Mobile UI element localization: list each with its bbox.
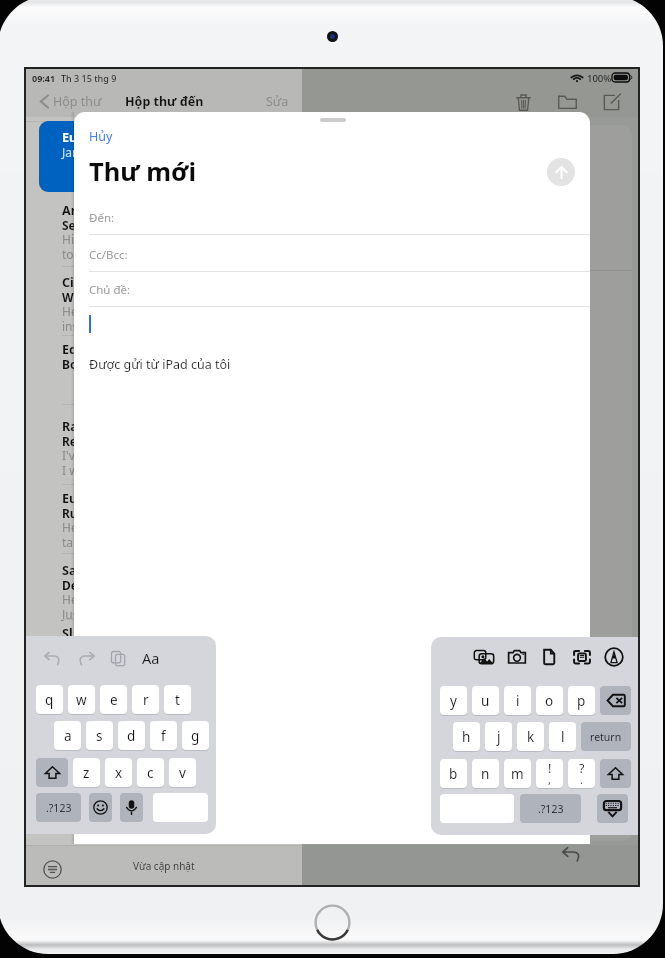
button[interactable]: Sabine Klein	[26, 562, 302, 619]
button[interactable]: Markup	[602, 645, 626, 669]
button[interactable]: f	[150, 721, 177, 750]
button[interactable]: s	[86, 721, 113, 750]
button[interactable]: b	[440, 759, 467, 788]
button[interactable]: Add document	[537, 645, 561, 669]
staticText: ,	[548, 772, 551, 787]
button[interactable]: Paste	[106, 646, 130, 670]
staticText: b	[449, 765, 458, 783]
button[interactable]: .?123	[36, 793, 81, 822]
button[interactable]: w	[68, 685, 95, 714]
staticText: n	[481, 765, 490, 783]
button[interactable]: z	[73, 758, 100, 787]
button[interactable]: l	[549, 722, 576, 751]
staticText: 100%	[587, 72, 612, 85]
button[interactable]: Shift	[36, 758, 68, 787]
button[interactable]: Ed Morrison	[26, 341, 302, 404]
button[interactable]: Take photo	[505, 645, 529, 669]
button[interactable]: r	[132, 685, 159, 714]
staticText: f	[161, 727, 166, 745]
staticText: y	[450, 692, 457, 710]
button[interactable]: Shift	[600, 759, 631, 788]
button[interactable]: Eugene Clark	[39, 121, 295, 192]
button[interactable]: Aa	[138, 646, 164, 670]
button[interactable]: Ciara Murphy	[26, 274, 302, 335]
button[interactable]: h	[453, 722, 480, 751]
button[interactable]: j	[485, 722, 512, 751]
staticText: q	[45, 691, 54, 709]
button[interactable]: a	[54, 721, 81, 750]
button[interactable]: ?	[568, 759, 595, 788]
button[interactable]: Redo	[74, 646, 98, 670]
staticText: Ed Morrison	[62, 341, 137, 358]
staticText: i	[516, 692, 520, 710]
staticText: j	[497, 728, 501, 746]
button[interactable]: Hide keyboard	[597, 794, 628, 823]
button[interactable]: Hủy	[89, 128, 113, 145]
staticText: I would like to get a	[62, 462, 173, 478]
staticText: I've attached the latest	[62, 447, 190, 463]
staticText: Release notes	[62, 433, 145, 449]
button[interactable]: Andrea Nguyen	[26, 202, 302, 266]
button[interactable]: c	[137, 758, 164, 787]
staticText: Đến:	[89, 210, 115, 226]
button[interactable]: Move to folder	[554, 89, 580, 115]
staticText: Eugene Clark	[62, 129, 144, 146]
button[interactable]: p	[568, 686, 595, 715]
button[interactable]: v	[169, 758, 196, 787]
staticText: Chủ đề:	[89, 282, 131, 298]
button[interactable]: return	[581, 722, 631, 751]
button[interactable]: g	[182, 721, 209, 750]
staticText: s	[96, 727, 103, 745]
staticText: a	[64, 727, 72, 745]
button[interactable]: n	[472, 759, 499, 788]
button[interactable]: Eugene Clark	[26, 490, 302, 553]
staticText: Eugene Clark	[62, 490, 144, 507]
button[interactable]: Scan document	[570, 645, 594, 669]
button[interactable]: .?123	[520, 794, 581, 823]
button[interactable]: Filter	[40, 857, 64, 881]
button[interactable]: Raj Patel	[26, 418, 302, 484]
staticText: Hộp thư đến	[125, 93, 204, 110]
button[interactable]: Sửa	[266, 93, 289, 110]
button[interactable]: i	[504, 686, 531, 715]
staticText: Just wanted to check in	[62, 606, 192, 622]
button[interactable]: Delete	[510, 89, 536, 115]
button[interactable]: k	[517, 722, 544, 751]
button[interactable]: Emoji	[89, 793, 112, 822]
staticText: Hộp thư	[53, 93, 102, 110]
staticText: Hey James, sorry can we	[62, 519, 199, 535]
staticText: Raj Patel	[62, 418, 117, 435]
staticText: Here are the mockups	[62, 591, 187, 607]
staticText: James, want to meet?	[62, 144, 183, 160]
button[interactable]: u	[472, 686, 499, 715]
button[interactable]: Insert photo	[472, 645, 496, 669]
staticText: Được gửi từ iPad của tôi	[89, 356, 231, 373]
staticText: Vừa cập nhật	[133, 859, 195, 873]
staticText: v	[179, 764, 186, 782]
staticText: d	[127, 727, 136, 745]
staticText: g	[191, 727, 200, 745]
button[interactable]: y	[440, 686, 467, 715]
button[interactable]: x	[105, 758, 132, 787]
button[interactable]: Dictate	[120, 793, 143, 822]
button[interactable]: !	[536, 759, 563, 788]
staticText: today? I was wondering	[62, 246, 196, 262]
staticText: installed at the venue	[62, 318, 184, 334]
button[interactable]: d	[118, 721, 145, 750]
button[interactable]: Compose	[598, 89, 624, 115]
button[interactable]: q	[36, 685, 63, 714]
button[interactable]: Backspace	[600, 686, 631, 715]
staticText: Aa	[142, 648, 160, 668]
button[interactable]: Hộp thư	[40, 93, 102, 110]
staticText: Design review	[62, 577, 146, 593]
button[interactable]: Send	[547, 158, 575, 186]
button[interactable]: o	[536, 686, 563, 715]
staticText: m	[511, 765, 524, 783]
button[interactable]: e	[100, 685, 127, 714]
button[interactable]: Reply	[559, 842, 583, 866]
button[interactable]: Space	[153, 793, 208, 822]
button[interactable]: Undo	[40, 646, 64, 670]
button[interactable]: t	[164, 685, 191, 714]
button[interactable]: m	[504, 759, 531, 788]
